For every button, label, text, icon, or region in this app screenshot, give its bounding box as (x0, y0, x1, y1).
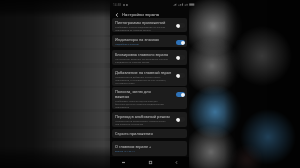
button[interactable]: Блокировка главного экрана (112, 50, 187, 65)
staticText: и виджетов на главном экране (115, 61, 150, 64)
button[interactable]: Home (137, 157, 163, 168)
button[interactable]: Переход в альбомный режим (112, 112, 187, 127)
staticText: важных (115, 94, 130, 99)
button[interactable]: Toggle (176, 73, 185, 78)
staticText: Автоматически поворачивать главный экран (115, 120, 166, 123)
staticText: Пиктограммы приложений (115, 20, 166, 25)
button[interactable]: Back (163, 157, 189, 168)
staticText: приложений на главном экране (115, 29, 151, 32)
button[interactable]: О главном экране + (112, 141, 187, 156)
staticText: при повороте устройства (115, 123, 144, 126)
button[interactable]: Пиктограммы приложений (112, 18, 187, 32)
button[interactable]: Toggle (176, 92, 185, 97)
button[interactable]: Toggle (176, 40, 185, 45)
staticText: О главном экране + (115, 144, 152, 149)
staticText: приложения (115, 106, 130, 109)
staticText: Добавление на главный экран (115, 70, 172, 75)
staticText: Версия 13.1.05.14 (115, 150, 135, 153)
button[interactable]: Индикаторы на значках (112, 35, 187, 47)
staticText: Не позволяет изменять расположение значк… (115, 58, 168, 61)
staticText: Автоматически добавлять значки новых (115, 76, 161, 79)
staticText: Настройки экрана (122, 12, 160, 18)
staticText: Скрыть приложения (115, 131, 153, 136)
button[interactable]: Полоска, меню для (112, 87, 187, 109)
staticText: на главный экран (115, 82, 135, 85)
button[interactable]: Toggle (176, 117, 185, 122)
button[interactable]: Recents (110, 157, 137, 168)
staticText: Отображать значки уведомлений на значках (115, 26, 166, 29)
staticText: Переход в альбомный режим (115, 114, 170, 119)
staticText: Полоска, меню для (115, 89, 151, 94)
staticText: приложений, установленных из Play Маркет… (115, 79, 167, 82)
staticText: Подробнее о значках (115, 43, 139, 46)
button[interactable]: Скрыть приложения (112, 129, 187, 138)
button[interactable]: Добавление на главный экран (112, 68, 187, 86)
button[interactable]: Back (112, 10, 121, 19)
staticText: Блокировка главного экрана (115, 52, 169, 57)
staticText: Отображать полоску под значком для (115, 100, 158, 103)
button[interactable]: Toggle (176, 23, 185, 28)
staticText: Индикаторы на значках (115, 37, 159, 42)
staticText: 14:38 (113, 3, 122, 7)
button[interactable]: Toggle (176, 55, 185, 60)
staticText: быстрого доступа к важным уведомлениям (115, 103, 164, 106)
